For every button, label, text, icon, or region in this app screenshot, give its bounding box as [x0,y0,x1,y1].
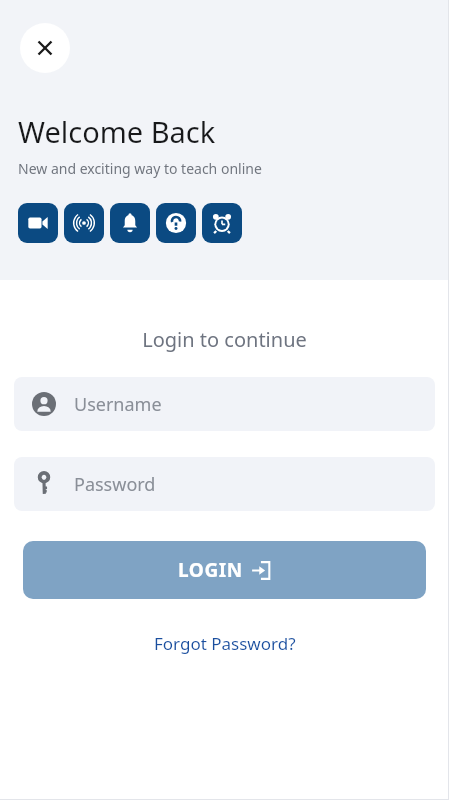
button[interactable]: Forgot Password? [148,628,302,659]
staticText: Login to continue [0,326,449,353]
button[interactable]: Notifications [110,203,150,243]
button[interactable]: Alarm [202,203,242,243]
staticText: New and exciting way to teach online [18,159,262,178]
staticText: LOGIN [178,557,243,583]
button[interactable]: Live broadcast [64,203,104,243]
button[interactable]: Help [156,203,196,243]
staticText: Forgot Password? [154,632,296,655]
button[interactable]: Video call [18,203,58,243]
button[interactable]: LOGIN [23,541,426,599]
staticText: Password [74,472,156,497]
button[interactable]: Password [14,457,435,511]
staticText: Welcome Back [18,112,216,151]
button[interactable]: Username [14,377,435,431]
staticText: Username [74,392,162,417]
button[interactable]: Close [20,23,70,73]
